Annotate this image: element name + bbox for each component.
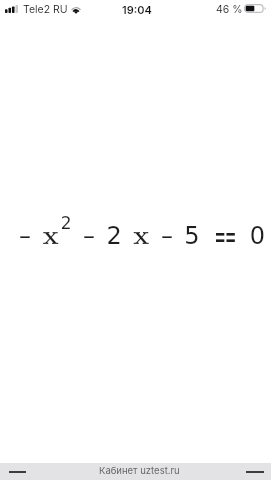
staticText: 46 % — [216, 3, 243, 16]
staticText: 19:04 — [122, 3, 152, 16]
staticText: – x2 – 2 x – 5 0 — [19, 213, 267, 252]
staticText: Tele2 RU — [23, 3, 68, 16]
button[interactable]: Кабинет uztest.ru — [99, 465, 180, 476]
button[interactable]: Forward — [244, 465, 266, 479]
button[interactable]: Back — [6, 465, 28, 479]
